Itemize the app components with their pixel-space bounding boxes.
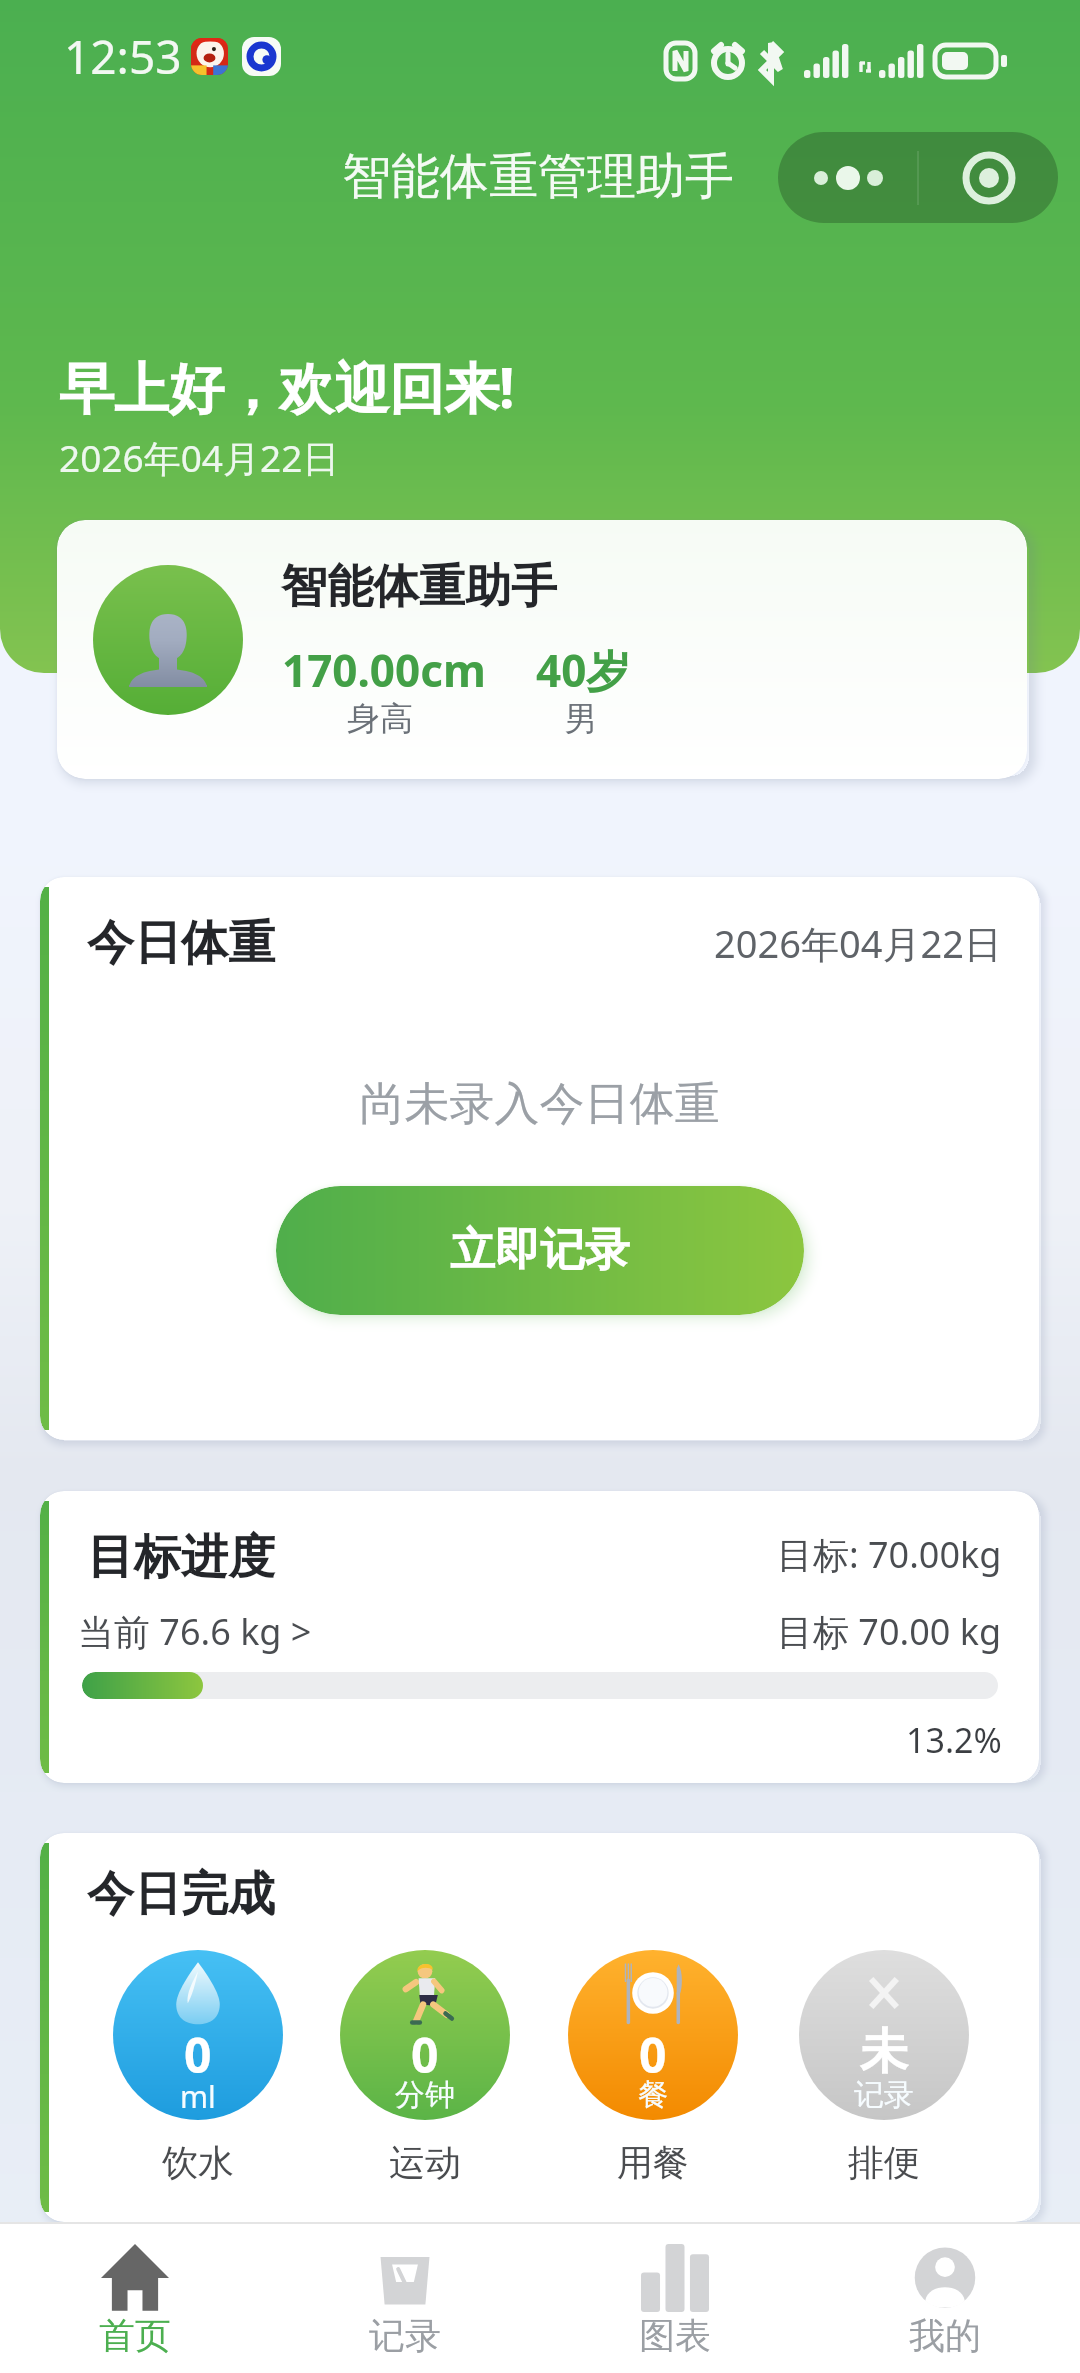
button[interactable]: 图表 [540, 2224, 810, 2373]
button[interactable]: 首页 [0, 2224, 270, 2373]
staticText: 记录 [854, 2076, 914, 2114]
staticText: 当前 76.6 kg > [78, 1607, 312, 1656]
staticText: 目标进度 [87, 1528, 275, 1587]
button[interactable]: 立即记录 [276, 1186, 804, 1315]
staticText: 13.2% [906, 1717, 1002, 1763]
staticText: 40岁 [536, 640, 631, 700]
staticText: 餐 [638, 2076, 668, 2114]
button[interactable]: 智能体重助手 [57, 520, 1027, 779]
button[interactable]: 0 [113, 1950, 283, 2120]
button[interactable]: Close mini program [919, 132, 1058, 223]
staticText: 早上好，欢迎回来! [59, 349, 515, 424]
button[interactable]: 我的 [810, 2224, 1080, 2373]
staticText: 目标 70.00 kg [777, 1607, 1002, 1656]
staticText: 饮水 [113, 2140, 283, 2185]
staticText: 今日完成 [87, 1865, 275, 1924]
staticText: 首页 [99, 2313, 171, 2358]
staticText: 分钟 [395, 2076, 455, 2114]
staticText: 尚未录入今日体重 [49, 1076, 1030, 1133]
staticText: 12:53 [64, 25, 182, 88]
staticText: 未 [860, 2022, 908, 2082]
button[interactable]: 未 [799, 1950, 969, 2120]
staticText: 今日体重 [87, 914, 275, 973]
button[interactable]: More options [778, 132, 917, 223]
button[interactable]: 0 [568, 1950, 738, 2120]
staticText: 智能体重管理助手 [342, 146, 734, 208]
staticText: 170.00cm [282, 640, 486, 700]
button[interactable]: 记录 [270, 2224, 540, 2373]
staticText: 目标: 70.00kg [777, 1530, 1002, 1579]
staticText: 身高 [315, 698, 445, 740]
staticText: 0 [411, 2022, 439, 2087]
staticText: 排便 [799, 2140, 969, 2185]
staticText: 2026年04月22日 [714, 917, 1002, 969]
button[interactable]: 0 [340, 1950, 510, 2120]
staticText: 用餐 [568, 2140, 738, 2185]
staticText: 我的 [909, 2313, 981, 2358]
staticText: 男 [516, 698, 646, 740]
staticText: 0 [639, 2022, 667, 2087]
staticText: 0 [184, 2022, 212, 2087]
staticText: ml [180, 2076, 216, 2117]
staticText: 智能体重助手 [281, 558, 557, 616]
staticText: 2026年04月22日 [59, 432, 340, 483]
staticText: 立即记录 [450, 1222, 630, 1279]
staticText: 运动 [340, 2140, 510, 2185]
staticText: 记录 [369, 2313, 441, 2358]
staticText: 图表 [639, 2313, 711, 2358]
